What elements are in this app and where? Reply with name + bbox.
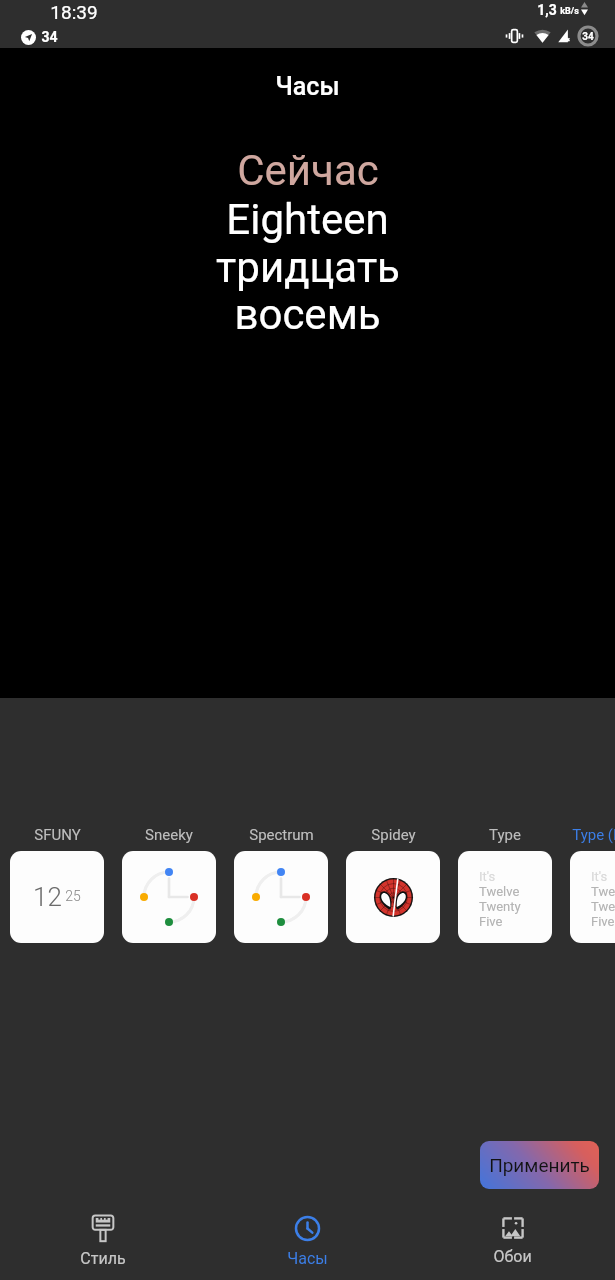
staticText: 34 (582, 31, 594, 43)
staticText: тридцать (216, 243, 400, 292)
staticText: Five (479, 914, 503, 929)
button[interactable]: Type (D (570, 826, 615, 943)
staticText: Twelve (591, 884, 615, 899)
staticText: Type (D (572, 826, 615, 844)
button[interactable]: Обои (410, 1216, 615, 1266)
button[interactable]: Type (458, 826, 552, 943)
button[interactable]: Стиль (0, 1215, 205, 1268)
staticText: Часы (287, 1249, 328, 1268)
staticText: 12 (33, 882, 62, 912)
staticText: Type (489, 826, 521, 844)
staticText: Часы (275, 72, 340, 101)
button[interactable]: Spectrum (234, 826, 328, 943)
staticText: Обои (493, 1247, 532, 1266)
staticText: It's (591, 869, 608, 884)
button[interactable]: Применить (480, 1141, 599, 1189)
staticText: Spidey (371, 826, 416, 844)
staticText: It's (479, 869, 496, 884)
staticText: Sneeky (145, 826, 193, 844)
staticText: 1,3 (537, 2, 557, 18)
staticText: 34 (41, 29, 58, 45)
staticText: Twelve (479, 884, 520, 899)
staticText: восемь (234, 290, 381, 339)
staticText: Сейчас (237, 146, 379, 195)
button[interactable]: Часы (205, 1215, 410, 1268)
button[interactable]: Sneeky (122, 826, 216, 943)
staticText: Применить (489, 1154, 590, 1176)
staticText: Five (591, 914, 615, 929)
staticText: Стиль (80, 1249, 126, 1268)
button[interactable]: Spidey (346, 826, 440, 943)
staticText: 25 (65, 888, 81, 904)
staticText: Spectrum (249, 826, 314, 844)
staticText: 18:39 (50, 1, 98, 23)
staticText: SFUNY (34, 826, 81, 844)
staticText: Twenty (591, 899, 615, 914)
staticText: Twenty (479, 899, 521, 914)
button[interactable]: SFUNY (10, 826, 104, 943)
staticText: kB/s (560, 6, 579, 17)
staticText: Eighteen (226, 195, 389, 244)
